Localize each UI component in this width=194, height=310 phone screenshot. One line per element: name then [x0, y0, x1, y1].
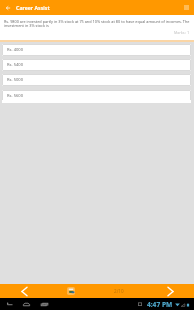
button[interactable]: Recent apps: [37, 298, 51, 310]
staticText: Marks : 1: [174, 30, 190, 35]
button[interactable]: Next question: [154, 284, 186, 298]
button[interactable]: Back: [0, 0, 16, 15]
button[interactable]: Rs. 5000: [2, 74, 191, 86]
staticText: Rs. 5400: [7, 62, 24, 68]
button[interactable]: Rs. 4000: [2, 44, 191, 56]
staticText: 4:47 PM: [147, 300, 173, 309]
button[interactable]: Home: [19, 298, 33, 310]
staticText: Rs. 9800 are invested partly in 3% stock…: [4, 19, 194, 29]
staticText: Career Assist: [16, 4, 50, 11]
button[interactable]: Back: [3, 298, 17, 310]
button[interactable]: Rs. 5400: [2, 59, 191, 71]
button[interactable]: Rs. 5600: [2, 90, 191, 102]
staticText: Rs. 4000: [7, 47, 24, 53]
staticText: 2/10: [114, 288, 124, 294]
button[interactable]: Bookmark question: [56, 284, 86, 298]
staticText: Rs. 5600: [7, 93, 24, 99]
button[interactable]: Previous question: [8, 284, 40, 298]
staticText: Rs. 5000: [7, 77, 24, 83]
button[interactable]: More options: [178, 0, 194, 15]
